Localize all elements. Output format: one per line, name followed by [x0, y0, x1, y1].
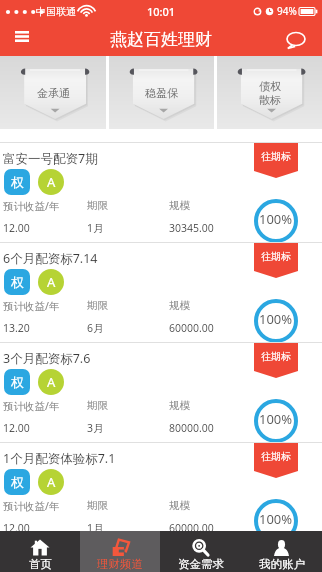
staticText: A [47, 473, 56, 491]
staticText: 权 [11, 374, 24, 390]
staticText: 预计收益/年 [3, 199, 87, 213]
staticText: 12.00 [3, 521, 87, 535]
staticText: 散标 [259, 93, 281, 107]
staticText: 3个月配资标7.6 [3, 350, 91, 367]
staticText: 80000.00 [169, 421, 214, 435]
staticText: 我的账户 [259, 557, 305, 571]
staticText: 往期标 [261, 350, 291, 363]
staticText: 规模 [169, 399, 190, 412]
staticText: A [47, 373, 56, 391]
staticText: 1月 [87, 221, 169, 235]
staticText: A [47, 273, 56, 291]
button[interactable]: 资金需求 [160, 531, 241, 572]
staticText: 往期标 [261, 150, 291, 163]
staticText: 12.00 [3, 421, 87, 435]
staticText: A [47, 173, 56, 191]
staticText: 预计收益/年 [3, 299, 87, 313]
staticText: 6个月配资标7.14 [3, 250, 98, 267]
button[interactable]: 富安一号配资7期 [0, 143, 322, 242]
staticText: 6月 [87, 321, 169, 335]
staticText: 3月 [87, 421, 169, 435]
staticText: 中国联通 [36, 5, 76, 18]
staticText: 期限 [87, 299, 169, 312]
staticText: 金承通 [37, 86, 70, 100]
staticText: 12.00 [3, 221, 87, 235]
staticText: 30345.00 [169, 221, 214, 235]
staticText: 规模 [169, 199, 190, 212]
button[interactable]: 1个月配资体验标7.1 [0, 443, 322, 542]
staticText: 100% [259, 310, 293, 328]
button[interactable]: 债权 [217, 56, 322, 129]
staticText: 100% [259, 410, 293, 428]
button[interactable]: 金承通 [0, 56, 106, 129]
staticText: 往期标 [261, 450, 291, 463]
staticText: 期限 [87, 399, 169, 412]
staticText: 1个月配资体验标7.1 [3, 450, 116, 467]
button[interactable]: Chat [284, 27, 308, 51]
staticText: 首页 [29, 557, 52, 571]
staticText: 60000.00 [169, 321, 214, 335]
button[interactable]: 我的账户 [241, 531, 322, 572]
staticText: 理财频道 [97, 557, 143, 571]
staticText: 100% [259, 210, 293, 228]
staticText: 权 [11, 474, 24, 490]
staticText: 预计收益/年 [3, 399, 87, 413]
staticText: 规模 [169, 499, 190, 512]
button[interactable]: 理财频道 [80, 531, 160, 572]
staticText: 权 [11, 174, 24, 190]
staticText: 债权 [259, 79, 281, 93]
staticText: 预计收益/年 [3, 499, 87, 513]
staticText: 94% [277, 4, 297, 18]
staticText: 期限 [87, 499, 169, 512]
staticText: 燕赵百姓理财 [110, 29, 212, 50]
button[interactable]: 6个月配资标7.14 [0, 243, 322, 342]
staticText: 13.20 [3, 321, 87, 335]
staticText: 往期标 [261, 250, 291, 263]
staticText: 10:01 [147, 4, 176, 19]
staticText: 期限 [87, 199, 169, 212]
staticText: 规模 [169, 299, 190, 312]
button[interactable]: 稳盈保 [109, 56, 214, 129]
staticText: 1月 [87, 521, 169, 535]
button[interactable]: 3个月配资标7.6 [0, 343, 322, 442]
staticText: 60000.00 [169, 521, 214, 535]
staticText: 资金需求 [178, 557, 224, 571]
button[interactable]: Menu [8, 26, 35, 53]
button[interactable]: 首页 [0, 531, 80, 572]
staticText: 权 [11, 274, 24, 290]
staticText: 富安一号配资7期 [3, 150, 98, 167]
staticText: 100% [259, 510, 293, 528]
staticText: 稳盈保 [145, 86, 178, 100]
